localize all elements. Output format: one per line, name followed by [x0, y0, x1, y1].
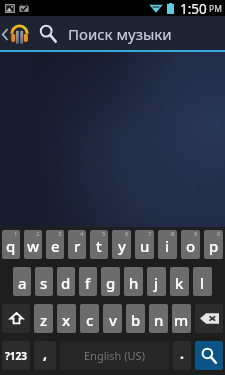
- button[interactable]: p: [204, 230, 223, 259]
- button[interactable]: ,: [34, 341, 56, 370]
- button[interactable]: Search: [33, 16, 63, 52]
- button[interactable]: y: [112, 230, 131, 259]
- button[interactable]: o: [181, 230, 200, 259]
- staticText: j: [154, 273, 159, 293]
- button[interactable]: .: [173, 341, 191, 370]
- staticText: t: [96, 236, 102, 256]
- button[interactable]: h: [124, 267, 143, 296]
- staticText: PM: [209, 3, 222, 15]
- staticText: 4: [80, 230, 84, 238]
- staticText: v: [109, 310, 117, 330]
- button[interactable]: t: [90, 230, 108, 259]
- button[interactable]: s: [35, 267, 53, 296]
- staticText: 9: [194, 230, 198, 238]
- button[interactable]: c: [80, 304, 99, 333]
- staticText: g: [106, 273, 116, 293]
- staticText: w: [27, 236, 40, 256]
- button[interactable]: q: [2, 230, 20, 259]
- button[interactable]: ?123: [2, 341, 30, 370]
- button[interactable]: a: [13, 267, 31, 296]
- staticText: 3: [58, 230, 62, 238]
- staticText: l: [200, 273, 205, 293]
- staticText: q: [6, 236, 16, 256]
- button[interactable]: Delete: [195, 304, 223, 333]
- button[interactable]: Поиск музыки: [63, 16, 225, 52]
- button[interactable]: l: [193, 267, 212, 296]
- staticText: o: [186, 236, 196, 256]
- button[interactable]: g: [101, 267, 120, 296]
- staticText: r: [74, 236, 81, 256]
- staticText: z: [40, 310, 48, 330]
- staticText: English (US): [84, 348, 145, 363]
- button[interactable]: w: [24, 230, 42, 259]
- staticText: 1:50: [180, 0, 207, 16]
- button[interactable]: z: [34, 304, 53, 333]
- staticText: s: [40, 273, 48, 293]
- button[interactable]: English (US): [60, 341, 169, 370]
- button[interactable]: n: [149, 304, 168, 333]
- button[interactable]: e: [46, 230, 64, 259]
- button[interactable]: x: [57, 304, 76, 333]
- staticText: ?123: [5, 349, 27, 363]
- staticText: u: [140, 236, 150, 256]
- button[interactable]: Search: [195, 341, 223, 370]
- staticText: p: [209, 236, 219, 256]
- staticText: d: [61, 273, 71, 293]
- button[interactable]: j: [147, 267, 166, 296]
- button[interactable]: Play Music, navigate up: [0, 16, 33, 52]
- staticText: e: [51, 236, 60, 256]
- staticText: .: [180, 344, 184, 363]
- staticText: 1: [14, 230, 18, 238]
- button[interactable]: i: [158, 230, 177, 259]
- staticText: f: [85, 273, 91, 293]
- staticText: k: [175, 273, 184, 293]
- staticText: 5: [102, 230, 106, 238]
- button[interactable]: r: [68, 230, 86, 259]
- staticText: c: [86, 310, 94, 330]
- staticText: ,: [43, 344, 47, 363]
- staticText: Поиск музыки: [68, 24, 172, 44]
- staticText: 6: [125, 230, 129, 238]
- staticText: 0: [217, 230, 221, 238]
- staticText: n: [154, 310, 164, 330]
- button[interactable]: m: [172, 304, 191, 333]
- button[interactable]: d: [57, 267, 75, 296]
- staticText: y: [118, 236, 126, 256]
- button[interactable]: v: [103, 304, 122, 333]
- staticText: 2: [36, 230, 40, 238]
- button[interactable]: f: [79, 267, 97, 296]
- staticText: i: [165, 236, 170, 256]
- staticText: m: [174, 310, 189, 330]
- staticText: 8: [171, 230, 175, 238]
- button[interactable]: Shift: [2, 304, 30, 333]
- staticText: x: [62, 310, 71, 330]
- staticText: b: [131, 310, 141, 330]
- staticText: a: [18, 273, 27, 293]
- button[interactable]: b: [126, 304, 145, 333]
- staticText: 7: [148, 230, 152, 238]
- button[interactable]: k: [170, 267, 189, 296]
- staticText: h: [129, 273, 139, 293]
- button[interactable]: u: [135, 230, 154, 259]
